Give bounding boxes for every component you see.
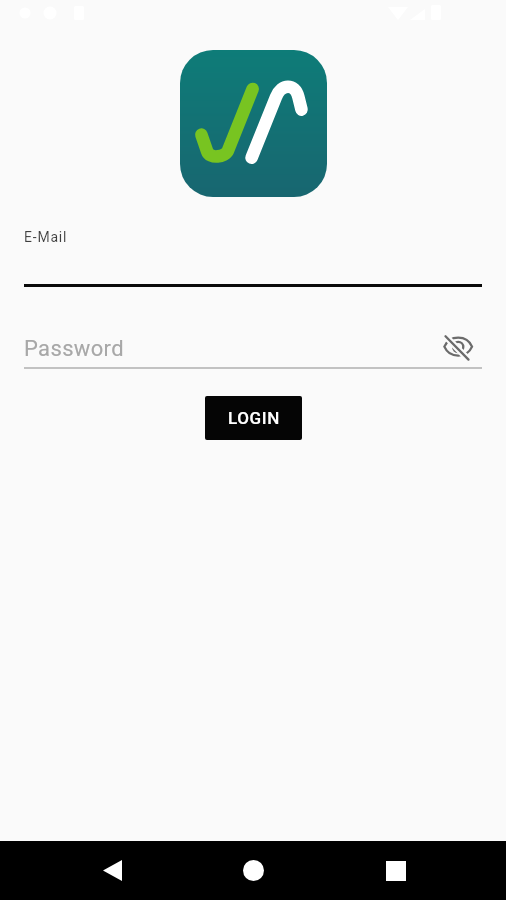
staticText: E-Mail	[24, 229, 68, 245]
button[interactable]: Toggle password visibility	[440, 330, 476, 366]
staticText: LOGIN	[228, 408, 280, 428]
staticText: Password	[24, 336, 124, 362]
button[interactable]: Recent apps	[366, 841, 426, 900]
button[interactable]: Home	[223, 841, 283, 900]
button[interactable]: LOGIN	[205, 396, 302, 440]
button[interactable]: Back	[82, 841, 142, 900]
